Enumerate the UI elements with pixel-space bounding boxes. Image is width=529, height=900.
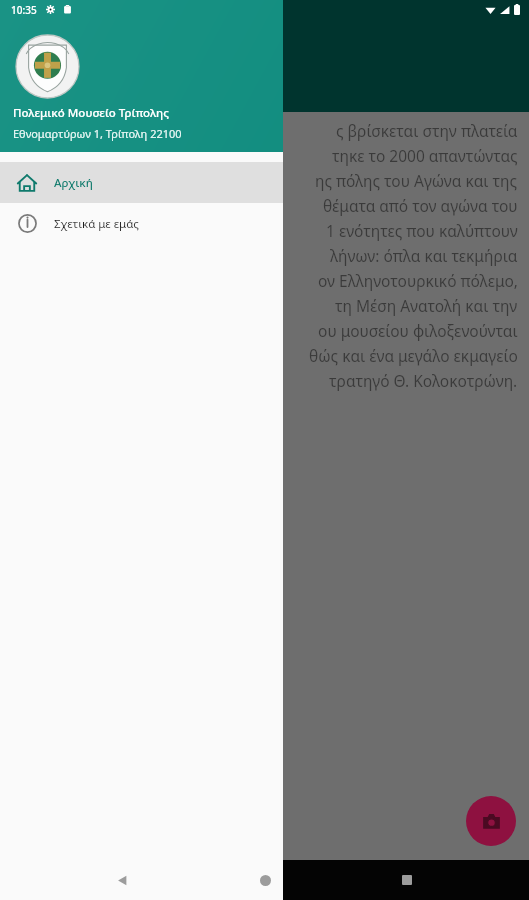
button[interactable]: Recent apps: [386, 860, 428, 900]
staticText: τρατηγό Θ. Κολοκοτρώνη.: [329, 370, 518, 391]
staticText: Εθνομαρτύρων 1, Τρίπολη 22100: [13, 126, 182, 141]
staticText: ης πόλης του Αγώνα και της: [315, 170, 518, 191]
staticText: ου μουσείου φιλοξενούνται: [318, 320, 518, 341]
staticText: τηκε το 2000 απαντώντας: [332, 145, 518, 166]
button[interactable]: Home: [244, 860, 286, 900]
staticText: λήνων: όπλα και τεκμήρια: [330, 245, 518, 266]
staticText: τη Μέση Ανατολή και την: [335, 295, 518, 316]
staticText: 10:35: [11, 3, 37, 17]
button[interactable]: Take photo: [466, 796, 516, 846]
staticText: ς βρίσκεται στην πλατεία: [336, 120, 518, 141]
staticText: θώς και ένα μεγάλο εκμαγείο: [309, 345, 518, 366]
button[interactable]: Back: [101, 860, 143, 900]
staticText: Πολεμικό Μουσείο Τρίπολης: [13, 105, 169, 121]
staticText: ον Ελληνοτουρκικό πόλεμο,: [318, 270, 518, 291]
staticText: Σχετικά με εμάς: [54, 216, 139, 232]
staticText: θέματα από τον αγώνα του: [323, 195, 518, 216]
staticText: 1 ενότητες που καλύπτουν: [326, 220, 518, 241]
button[interactable]: Αρχική: [0, 162, 283, 203]
staticText: Αρχική: [54, 175, 93, 191]
button[interactable]: Σχετικά με εμάς: [0, 203, 283, 244]
